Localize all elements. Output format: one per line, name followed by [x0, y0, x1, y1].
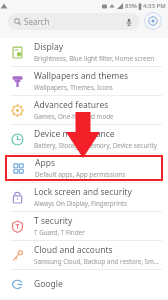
- staticText: Always On Display, Fingerprints: [34, 199, 128, 208]
- staticText: 85%: [125, 2, 137, 10]
- staticText: T Guard, T Finder: [34, 228, 85, 237]
- staticText: Wallpapers, Themes, Icons: [34, 83, 113, 92]
- staticText: Samsung Cloud, Backup and restore, Smart…: [34, 257, 162, 266]
- staticText: 4:33 PM: [143, 2, 166, 10]
- staticText: Device maintenance: [34, 128, 115, 140]
- button[interactable]: Display: [0, 38, 168, 66]
- button[interactable]: Wallpapers and themes: [0, 67, 168, 95]
- staticText: Default apps, App permissions: [35, 170, 126, 179]
- staticText: Search: [24, 16, 50, 27]
- button[interactable]: Google: [0, 270, 168, 298]
- staticText: Battery, Storage, Memory, Device securit…: [34, 141, 157, 150]
- staticText: T security: [34, 215, 73, 227]
- staticText: Wallpapers and themes: [34, 70, 129, 82]
- button[interactable]: Advanced features: [0, 96, 168, 124]
- staticText: Brightness, Blue light filter, Home scre…: [34, 54, 155, 63]
- button[interactable]: Cloud and accounts: [0, 241, 168, 269]
- staticText: Display: [34, 41, 63, 53]
- button[interactable]: Search: [8, 13, 140, 30]
- staticText: Google: [34, 278, 63, 290]
- button[interactable]: Voice search: [123, 16, 135, 28]
- button[interactable]: Account: [144, 12, 162, 30]
- button[interactable]: Apps: [5, 155, 163, 181]
- staticText: Games, One-handed mode: [34, 112, 114, 121]
- button[interactable]: Lock screen and security: [0, 183, 168, 211]
- staticText: Apps: [35, 157, 55, 169]
- staticText: Advanced features: [34, 99, 109, 111]
- button[interactable]: Device maintenance: [0, 125, 168, 153]
- staticText: Lock screen and security: [34, 186, 132, 198]
- staticText: Cloud and accounts: [34, 244, 113, 256]
- button[interactable]: T security: [0, 212, 168, 240]
